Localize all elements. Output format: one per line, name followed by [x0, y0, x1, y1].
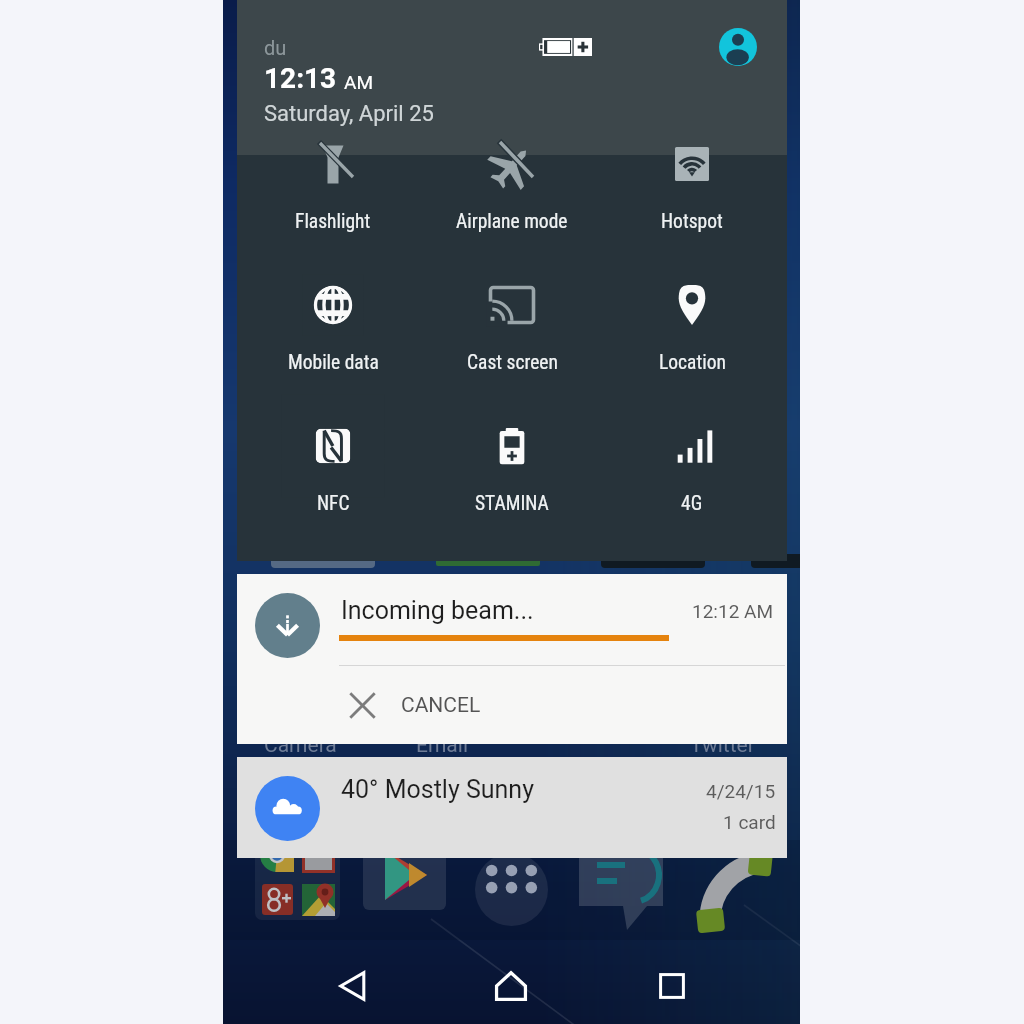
staticText: Camera	[264, 733, 337, 758]
staticText: Cast screen	[467, 351, 558, 374]
staticText: Email	[416, 733, 468, 758]
staticText: 4/24/15	[706, 780, 776, 802]
button[interactable]: Mobile data	[242, 259, 424, 371]
button[interactable]: 40° Mostly Sunny	[237, 757, 787, 858]
staticText: 40° Mostly Sunny	[341, 775, 534, 804]
button[interactable]: Recent apps	[628, 942, 716, 1024]
staticText: Mobile data	[288, 351, 379, 374]
staticText: Saturday, April 25	[264, 101, 434, 127]
button[interactable]: Home	[467, 942, 555, 1024]
staticText: CANCEL	[401, 693, 481, 718]
staticText: 4G	[681, 492, 703, 515]
button[interactable]: Back	[309, 942, 397, 1024]
staticText: NFC	[317, 492, 350, 515]
staticText: AM	[344, 71, 373, 93]
button[interactable]: Location	[601, 259, 783, 371]
button[interactable]: Hotspot	[601, 120, 783, 232]
staticText: Flashlight	[295, 210, 371, 233]
staticText: Hotspot	[661, 210, 723, 233]
staticText: 1 card	[723, 811, 776, 833]
button[interactable]: NFC	[242, 400, 424, 512]
button[interactable]: CANCEL	[237, 666, 787, 744]
staticText: du	[264, 36, 287, 59]
staticText: Location	[659, 351, 726, 374]
button[interactable]: STAMINA	[421, 400, 603, 512]
button[interactable]: Airplane mode	[421, 120, 603, 232]
staticText: STAMINA	[475, 492, 549, 515]
button[interactable]: Incoming beam...	[237, 574, 787, 665]
staticText: 12:13	[264, 62, 337, 95]
staticText: Airplane mode	[456, 210, 568, 233]
button[interactable]: Flashlight	[242, 120, 424, 232]
button[interactable]: Cast screen	[421, 259, 603, 371]
staticText: 12:12 AM	[692, 600, 774, 622]
button[interactable]: User profile	[719, 28, 757, 66]
staticText: Incoming beam...	[341, 596, 534, 625]
button[interactable]: 4G	[601, 400, 783, 512]
staticText: Twitter	[690, 733, 755, 758]
